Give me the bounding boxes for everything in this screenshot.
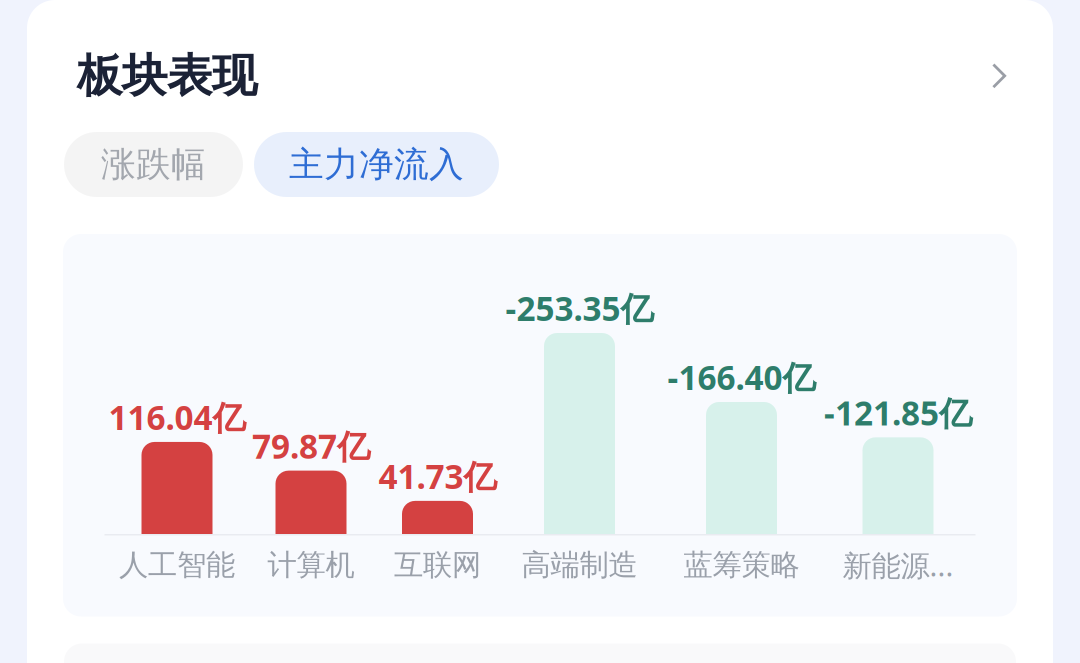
staticText: 高端制造 — [521, 547, 637, 583]
button[interactable]: 涨跌幅 — [64, 132, 243, 197]
staticText: 79.87亿 — [252, 424, 370, 468]
staticText: 板块表现 — [77, 48, 257, 104]
button[interactable]: 116.04亿 — [63, 234, 1017, 616]
staticText: 互联网 — [394, 547, 481, 583]
staticText: 人工智能 — [119, 547, 235, 583]
staticText: 新能源... — [842, 545, 953, 584]
staticText: 41.73亿 — [378, 454, 496, 498]
staticText: 116.04亿 — [108, 395, 245, 439]
staticText: -121.85亿 — [824, 390, 972, 435]
staticText: -166.40亿 — [667, 355, 815, 399]
button[interactable]: 板块表现 — [27, 0, 1053, 132]
button[interactable]: 主力净流入 — [254, 132, 499, 197]
staticText: -253.35亿 — [505, 286, 653, 330]
staticText: 主力净流入 — [289, 143, 464, 186]
staticText: 涨跌幅 — [101, 143, 206, 186]
staticText: 计算机 — [267, 547, 354, 583]
staticText: 蓝筹策略 — [683, 547, 799, 583]
